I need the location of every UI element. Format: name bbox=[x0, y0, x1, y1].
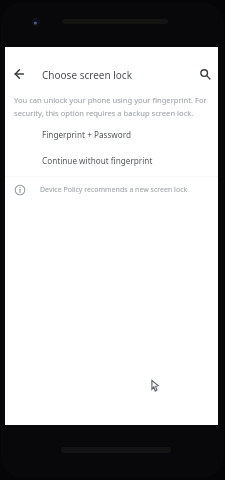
staticText: Fingerprint + Password bbox=[42, 129, 131, 140]
button[interactable]: Navigate up bbox=[9, 64, 29, 84]
staticText: Continue without fingerprint bbox=[42, 155, 153, 166]
staticText: Choose screen lock bbox=[42, 68, 132, 82]
button[interactable]: Search bbox=[195, 64, 215, 84]
staticText: You can unlock your phone using your fin… bbox=[14, 95, 213, 118]
staticText: Device Policy recommends a new screen lo… bbox=[40, 185, 188, 195]
button[interactable]: Fingerprint + Password bbox=[5, 123, 218, 146]
button[interactable]: Continue without fingerprint bbox=[5, 149, 218, 172]
